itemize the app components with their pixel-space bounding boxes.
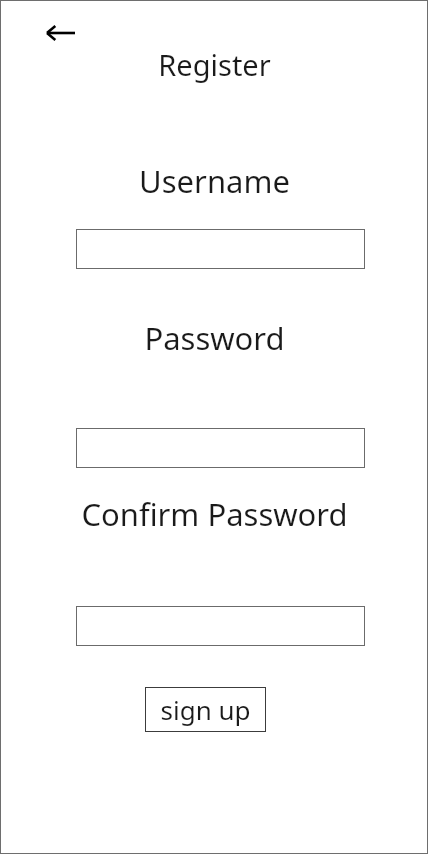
staticText: sign up [160, 692, 251, 727]
button[interactable]: sign up [145, 687, 266, 732]
button[interactable]: Text field [76, 428, 365, 468]
staticText: Password [144, 317, 285, 359]
button[interactable]: Back [39, 11, 83, 55]
staticText: Register [158, 45, 271, 84]
staticText: Username [139, 160, 290, 202]
staticText: Confirm Password [81, 493, 348, 535]
button[interactable]: Text field [76, 606, 365, 646]
button[interactable]: Text field [76, 229, 365, 269]
